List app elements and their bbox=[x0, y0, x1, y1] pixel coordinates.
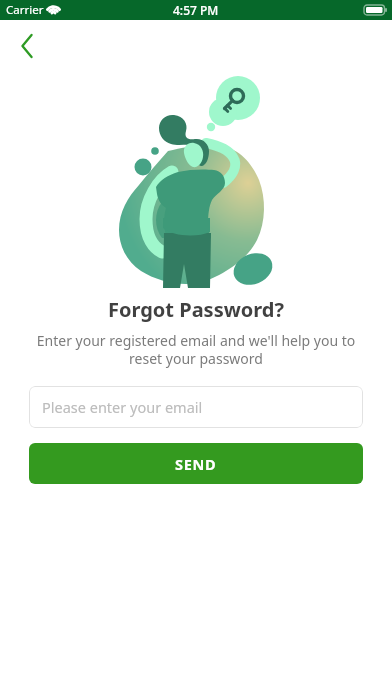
button[interactable]: SEND bbox=[29, 443, 363, 484]
button[interactable]: Back bbox=[5, 24, 48, 67]
staticText: Enter your registered email and we'll he… bbox=[26, 331, 366, 368]
staticText: Please enter your email bbox=[42, 397, 203, 417]
staticText: 4:57 PM bbox=[173, 2, 219, 18]
staticText: SEND bbox=[175, 454, 217, 474]
button[interactable]: Please enter your email bbox=[29, 386, 363, 428]
staticText: Forgot Password? bbox=[0, 296, 392, 323]
staticText: Carrier bbox=[6, 2, 44, 18]
